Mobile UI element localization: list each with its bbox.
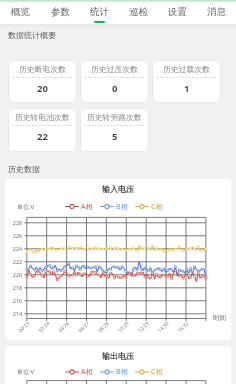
staticText: 历史转旁路次数 [87,112,142,122]
staticText: 历史数据 [8,164,40,174]
button[interactable]: 设置 [158,0,197,24]
button[interactable]: 历史转旁路次数 [80,108,149,152]
button[interactable]: 历史过压次数 [80,60,149,103]
staticText: 数据统计概要 [8,30,56,40]
button[interactable] [5,346,231,384]
button[interactable]: 巡检 [119,0,158,24]
button[interactable] [5,179,231,340]
button[interactable]: 统计 [80,0,119,24]
staticText: 历史断电次数 [19,64,66,74]
staticText: 概览 [11,6,30,18]
staticText: 历史过载次数 [163,64,210,74]
staticText: 5 [112,130,118,143]
staticText: 22 [37,130,48,143]
staticText: 历史过压次数 [91,64,138,74]
staticText: 统计 [90,6,109,18]
staticText: 1 [184,82,190,95]
button[interactable]: 消息 [197,0,236,24]
staticText: 巡检 [129,6,148,18]
staticText: 历史转电池次数 [15,112,70,122]
button[interactable]: 历史转电池次数 [8,108,77,152]
staticText: 设置 [168,6,187,18]
button[interactable]: 历史断电次数 [8,60,77,103]
button[interactable]: 参数 [40,0,80,24]
staticText: 参数 [51,6,70,18]
staticText: 0 [112,82,118,95]
button[interactable]: 概览 [0,0,40,24]
staticText: 20 [37,82,48,95]
button[interactable]: 历史过载次数 [152,60,221,103]
staticText: 消息 [207,6,226,18]
